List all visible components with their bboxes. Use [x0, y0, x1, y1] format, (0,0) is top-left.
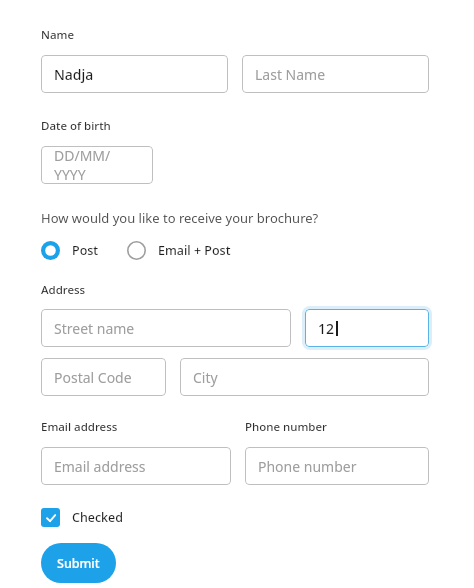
- button[interactable]: Phone number: [245, 447, 429, 485]
- staticText: City: [193, 368, 218, 387]
- staticText: Last Name: [255, 65, 326, 84]
- button[interactable]: Last Name: [242, 55, 429, 93]
- staticText: Email address: [41, 419, 118, 435]
- staticText: Checked: [72, 509, 124, 526]
- button[interactable]: Submit: [41, 543, 116, 583]
- button[interactable]: Nadja: [41, 55, 228, 93]
- staticText: Submit: [57, 555, 100, 572]
- button[interactable]: Email + Post: [127, 239, 231, 262]
- staticText: Phone number: [258, 457, 357, 476]
- staticText: Email address: [54, 457, 146, 476]
- staticText: Email + Post: [158, 242, 231, 259]
- staticText: Post: [72, 242, 99, 259]
- staticText: Name: [41, 27, 74, 43]
- staticText: Date of birth: [41, 118, 111, 134]
- button[interactable]: Email address: [41, 447, 231, 485]
- button[interactable]: 12: [305, 309, 429, 347]
- button[interactable]: DD/MM/YYYY: [41, 146, 153, 184]
- staticText: Nadja: [54, 65, 94, 84]
- staticText: How would you like to receive your broch…: [41, 209, 319, 227]
- button[interactable]: Checked: [41, 508, 124, 527]
- staticText: DD/MM/YYYY: [54, 146, 140, 184]
- staticText: Street name: [54, 319, 135, 338]
- staticText: Postal Code: [54, 368, 132, 387]
- button[interactable]: City: [180, 358, 429, 396]
- staticText: 12: [318, 319, 335, 338]
- button[interactable]: Street name: [41, 309, 291, 347]
- staticText: Phone number: [245, 419, 327, 435]
- staticText: Address: [41, 282, 86, 298]
- button[interactable]: Post: [41, 239, 99, 262]
- button[interactable]: Postal Code: [41, 358, 166, 396]
